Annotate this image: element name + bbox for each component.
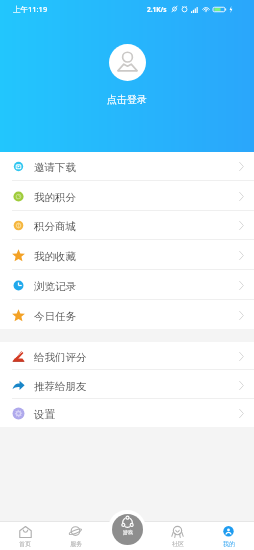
staticText: 积分商城: [34, 220, 76, 233]
button[interactable]: 我的: [203, 521, 254, 550]
staticText: 服务: [70, 540, 82, 548]
button[interactable]: 我的收藏: [0, 241, 254, 270]
staticText: 浏览记录: [34, 280, 76, 293]
button[interactable]: 设置: [0, 399, 254, 427]
staticText: 邀请下载: [34, 161, 76, 174]
button[interactable]: 积分商城: [0, 211, 254, 240]
staticText: 2.1K/s: [147, 5, 167, 14]
button[interactable]: 我的积分: [0, 182, 254, 211]
staticText: 点击登录: [107, 93, 147, 106]
button[interactable]: 今日任务: [0, 301, 254, 330]
button[interactable]: 推荐给朋友: [0, 371, 254, 399]
staticText: 设置: [34, 408, 55, 421]
staticText: 我的积分: [34, 191, 76, 204]
button[interactable]: 浏览记录: [0, 271, 254, 300]
staticText: 今日任务: [34, 310, 76, 323]
staticText: 推荐给朋友: [34, 380, 87, 393]
button[interactable]: 首页: [0, 521, 50, 550]
staticText: 首页: [19, 540, 31, 548]
button[interactable]: 点击登录: [107, 44, 147, 106]
staticText: 我的收藏: [34, 250, 76, 263]
staticText: 给我们评分: [34, 351, 87, 364]
button[interactable]: 社区: [152, 521, 203, 550]
button[interactable]: 邀请下载: [0, 152, 254, 181]
staticText: 社区: [172, 540, 184, 548]
button[interactable]: 给我们评分: [0, 342, 254, 370]
staticText: 上午11:19: [13, 4, 48, 14]
staticText: 我的: [223, 540, 235, 548]
button[interactable]: 服务: [50, 521, 101, 550]
staticText: 游戏: [123, 529, 133, 535]
button[interactable]: 游戏: [112, 514, 143, 545]
